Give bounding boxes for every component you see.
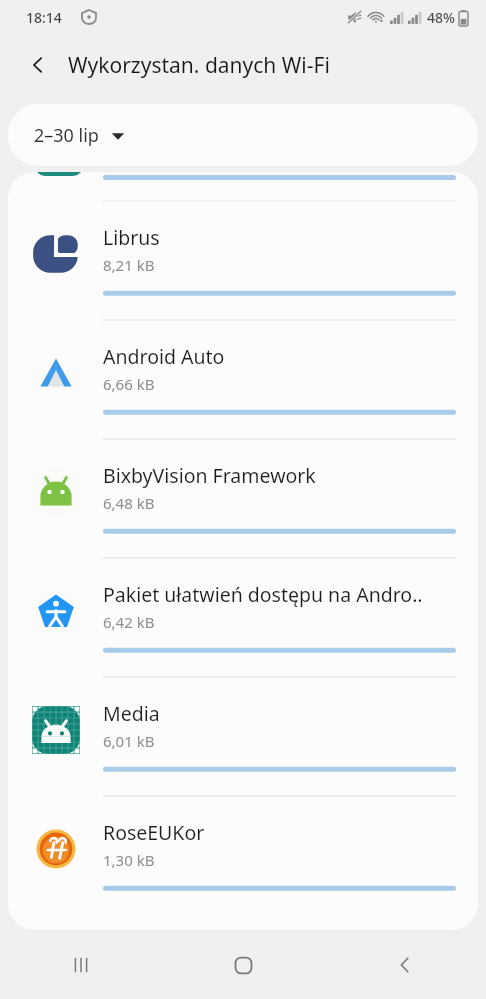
staticText: Librus bbox=[103, 224, 160, 251]
button[interactable]: Android Auto bbox=[8, 321, 478, 440]
button[interactable]: 2–30 lip bbox=[8, 104, 478, 166]
staticText: BixbyVision Framework bbox=[103, 462, 316, 489]
button[interactable]: RoseEUKor bbox=[8, 797, 478, 916]
button[interactable]: Home bbox=[211, 933, 275, 997]
staticText: Media bbox=[103, 700, 160, 727]
staticText: Android Auto bbox=[103, 343, 225, 370]
staticText: 6,01 kB bbox=[103, 731, 155, 751]
button[interactable]: Back bbox=[373, 933, 437, 997]
button[interactable]: Pakiet ułatwień dostępu na Andro.. bbox=[8, 559, 478, 678]
button[interactable]: Media bbox=[8, 678, 478, 797]
staticText: 2–30 lip bbox=[34, 123, 99, 148]
button[interactable]: Librus bbox=[8, 202, 478, 321]
staticText: RoseEUKor bbox=[103, 819, 205, 846]
staticText: 18:14 bbox=[26, 8, 62, 27]
staticText: Wykorzystan. danych Wi-Fi bbox=[68, 51, 330, 80]
button[interactable]: Recents bbox=[49, 933, 113, 997]
staticText: 48% bbox=[427, 8, 455, 27]
button[interactable]: Back bbox=[16, 43, 60, 87]
button[interactable]: BixbyVision Framework bbox=[8, 440, 478, 559]
staticText: 6,66 kB bbox=[103, 374, 155, 394]
staticText: Pakiet ułatwień dostępu na Andro.. bbox=[103, 581, 423, 608]
staticText: 8,21 kB bbox=[103, 255, 155, 275]
staticText: 6,42 kB bbox=[103, 612, 155, 632]
staticText: 1,30 kB bbox=[103, 850, 155, 870]
staticText: 6,48 kB bbox=[103, 493, 155, 513]
